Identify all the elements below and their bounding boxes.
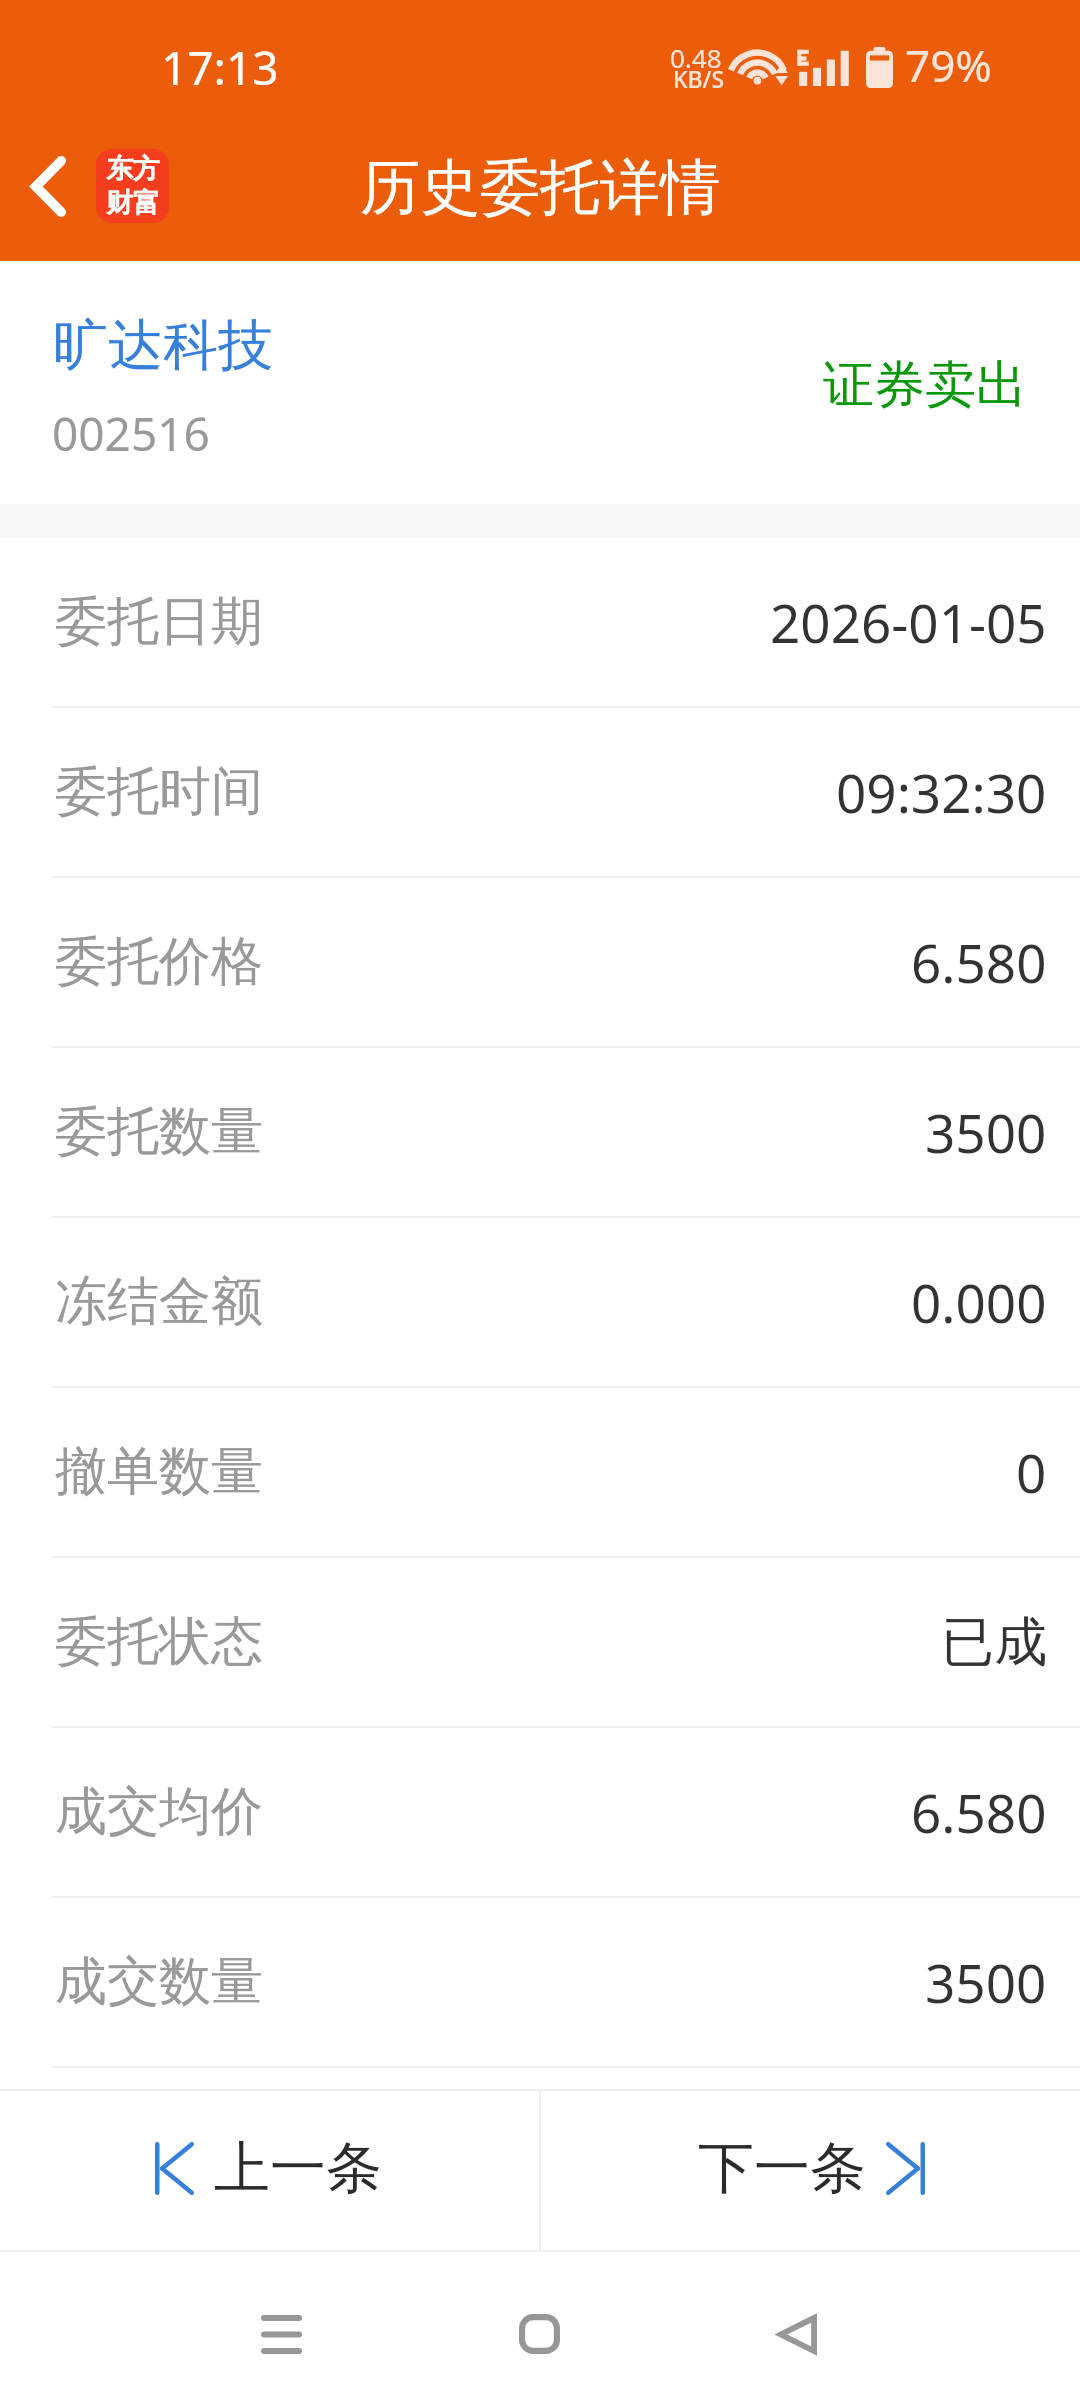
staticText: 0.000 bbox=[911, 1266, 1047, 1338]
staticText: 002516 bbox=[52, 402, 210, 465]
staticText: 17:13 bbox=[161, 36, 279, 99]
other: Back bbox=[31, 156, 66, 217]
staticText: 0 bbox=[1016, 1436, 1047, 1508]
button[interactable]: Recent apps bbox=[221, 2274, 341, 2394]
staticText: 79% bbox=[905, 35, 992, 95]
staticText: 上一条 bbox=[214, 2133, 382, 2204]
staticText: 下一条 bbox=[698, 2133, 866, 2204]
staticText: 委托价格 bbox=[55, 929, 263, 995]
staticText: 旷达科技 bbox=[53, 311, 273, 380]
staticText: 历史委托详情 bbox=[360, 150, 720, 226]
button[interactable]: Back bbox=[0, 129, 185, 243]
staticText: 冻结金额 bbox=[55, 1269, 263, 1335]
staticText: 撤单数量 bbox=[55, 1439, 263, 1505]
staticText: 委托状态 bbox=[55, 1609, 263, 1675]
button[interactable]: Back bbox=[737, 2274, 857, 2394]
staticText: KB/S bbox=[673, 63, 725, 94]
staticText: 0.48 bbox=[670, 40, 722, 75]
staticText: 2026-01-05 bbox=[770, 586, 1047, 658]
staticText: 东方 bbox=[106, 152, 160, 186]
staticText: 委托时间 bbox=[55, 759, 263, 825]
staticText: 6.580 bbox=[911, 926, 1047, 998]
staticText: 成交数量 bbox=[55, 1949, 263, 2015]
button[interactable]: Home bbox=[479, 2274, 599, 2394]
staticText: 已成 bbox=[941, 1609, 1047, 1676]
staticText: 财富 bbox=[106, 186, 160, 220]
staticText: 6.580 bbox=[911, 1776, 1047, 1848]
staticText: 3500 bbox=[925, 1096, 1047, 1168]
staticText: 3500 bbox=[925, 1946, 1047, 2018]
button[interactable]: 上一条 bbox=[0, 2091, 539, 2250]
staticText: 成交均价 bbox=[55, 1779, 263, 1845]
staticText: 证券卖出 bbox=[823, 353, 1027, 417]
staticText: 委托日期 bbox=[55, 589, 263, 655]
staticText: 委托数量 bbox=[55, 1099, 263, 1165]
button[interactable]: 下一条 bbox=[541, 2091, 1080, 2250]
staticText: 09:32:30 bbox=[836, 756, 1047, 828]
